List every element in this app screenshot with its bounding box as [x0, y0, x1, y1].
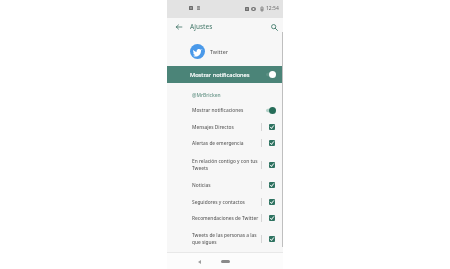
button[interactable]: Search [265, 18, 283, 36]
staticText: @MrBricken [192, 92, 221, 99]
button[interactable]: Tweets de las personas a las que sigues [167, 226, 283, 251]
button[interactable]: Mostrar notificaciones [167, 102, 283, 118]
staticText: Twitter [210, 48, 228, 55]
staticText: Mostrar notificaciones [192, 107, 264, 114]
button[interactable]: Enabled [269, 162, 275, 168]
button[interactable]: Back [171, 19, 187, 35]
button[interactable]: Enabled [269, 236, 275, 242]
staticText: Ajustes [190, 22, 213, 31]
button[interactable]: Seguidores y contactos [167, 194, 283, 210]
button[interactable]: Alertas de emergencia [167, 135, 283, 151]
button[interactable]: Enabled [269, 199, 275, 205]
button[interactable]: Enabled [269, 215, 275, 221]
button[interactable]: Enabled [269, 182, 275, 188]
button[interactable]: Back [194, 256, 205, 267]
button[interactable]: Home [221, 260, 230, 263]
staticText: En relación contigo y con tus Tweets [192, 158, 259, 172]
button[interactable]: Recomendaciones de Twitter [167, 210, 283, 226]
staticText: 12:54 [266, 5, 279, 12]
button[interactable]: Noticias [167, 177, 283, 193]
staticText: Seguidores y contactos [192, 199, 259, 206]
staticText: Tweets de las personas a las que sigues [192, 232, 259, 246]
button[interactable]: Mensajes Directos [167, 119, 283, 135]
staticText: Alertas de emergencia [192, 140, 259, 147]
button[interactable]: En relación contigo y con tus Tweets [167, 152, 283, 177]
button[interactable]: Mostrar notificaciones [167, 66, 283, 83]
staticText: Mensajes Directos [192, 124, 259, 131]
staticText: Recomendaciones de Twitter [192, 215, 259, 222]
staticText: Mostrar notificaciones [190, 71, 250, 79]
button[interactable]: Enabled [269, 140, 275, 146]
button[interactable]: Enabled [269, 124, 275, 130]
staticText: Noticias [192, 182, 259, 189]
